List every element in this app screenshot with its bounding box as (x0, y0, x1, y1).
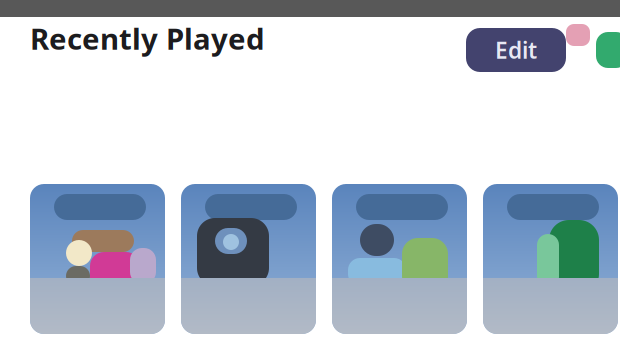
staticText: Recently Played (30, 19, 265, 58)
button[interactable] (30, 184, 165, 334)
button[interactable]: Edit (466, 28, 566, 72)
staticText: Edit (495, 35, 537, 65)
button[interactable] (483, 184, 618, 334)
button[interactable] (332, 184, 467, 334)
button[interactable] (181, 184, 316, 334)
button[interactable]: Add (596, 32, 620, 68)
